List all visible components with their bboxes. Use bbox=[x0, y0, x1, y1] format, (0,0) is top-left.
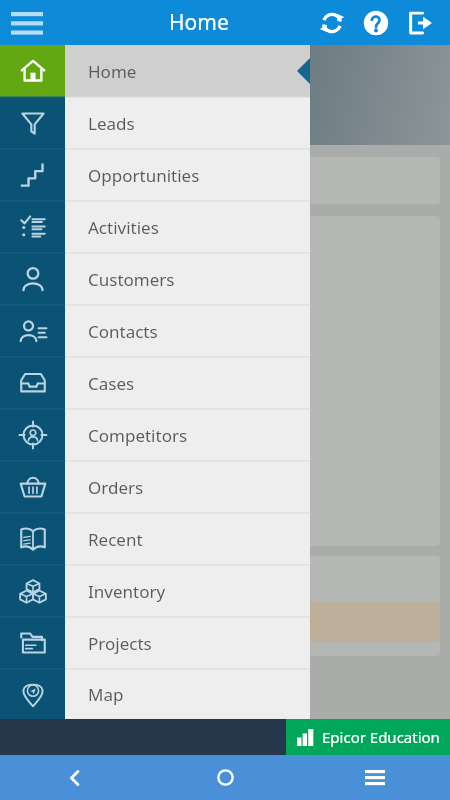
button[interactable]: Inventory bbox=[65, 565, 310, 617]
staticText: Home bbox=[88, 60, 137, 83]
staticText: Cases bbox=[88, 372, 135, 395]
button[interactable]: Menu bbox=[0, 0, 54, 45]
button[interactable]: Epicor Education bbox=[286, 719, 450, 755]
button[interactable]: Refresh bbox=[310, 1, 354, 45]
staticText: Epicor Education bbox=[322, 727, 440, 747]
staticText: Map bbox=[88, 683, 124, 706]
button[interactable]: Orders bbox=[0, 461, 65, 513]
button[interactable]: Competitors bbox=[0, 409, 65, 461]
staticText: Home bbox=[169, 8, 229, 37]
button[interactable]: Opportunities bbox=[65, 149, 310, 201]
button[interactable]: Activities bbox=[0, 201, 65, 253]
button[interactable]: Cases bbox=[65, 357, 310, 409]
staticText: s.epicor.net bbox=[10, 100, 90, 120]
button[interactable]: Home bbox=[150, 755, 300, 800]
button[interactable]: Leads bbox=[0, 97, 65, 149]
button[interactable]: Leads bbox=[65, 97, 310, 149]
staticText: 18 bbox=[22, 165, 49, 196]
button[interactable]: Projects bbox=[65, 617, 310, 669]
staticText: Orders bbox=[88, 476, 144, 499]
button[interactable]: Contacts bbox=[0, 305, 65, 357]
button[interactable]: Contacts bbox=[65, 305, 310, 357]
button[interactable]: Opportunities bbox=[0, 149, 65, 201]
button[interactable]: Projects bbox=[0, 617, 65, 669]
button[interactable]: Recent bbox=[65, 513, 310, 565]
staticText: w Task Type bbox=[20, 568, 110, 590]
button[interactable]: Activities bbox=[65, 201, 310, 253]
button[interactable]: Orders bbox=[65, 461, 310, 513]
staticText: Contacts bbox=[88, 320, 158, 343]
button[interactable]: Home bbox=[65, 45, 310, 97]
button[interactable]: Log out bbox=[398, 1, 442, 45]
staticText: Customers bbox=[88, 268, 175, 291]
staticText: Opportunities bbox=[88, 164, 200, 187]
button[interactable]: Recent apps bbox=[300, 755, 450, 800]
button[interactable]: Recent bbox=[0, 513, 65, 565]
staticText: Leads bbox=[88, 112, 135, 135]
staticText: Projects bbox=[88, 632, 152, 655]
button[interactable]: Customers bbox=[65, 253, 310, 305]
button[interactable]: Activities bbox=[10, 216, 440, 316]
button[interactable]: Inventory bbox=[0, 565, 65, 617]
button[interactable]: Back bbox=[0, 755, 150, 800]
staticText: Inventory bbox=[88, 580, 166, 603]
button[interactable]: Map bbox=[65, 669, 310, 719]
button[interactable]: Customers bbox=[0, 253, 65, 305]
staticText: Competitors bbox=[88, 424, 188, 447]
button[interactable]: Help bbox=[354, 1, 398, 45]
button[interactable]: Orders bbox=[10, 316, 440, 416]
staticText: Recent bbox=[88, 528, 143, 551]
button[interactable]: Map bbox=[0, 669, 65, 719]
button[interactable]: Cases bbox=[0, 357, 65, 409]
button[interactable]: Competitors bbox=[65, 409, 310, 461]
staticText: Activities bbox=[88, 216, 159, 239]
button[interactable]: Home bbox=[0, 45, 65, 97]
